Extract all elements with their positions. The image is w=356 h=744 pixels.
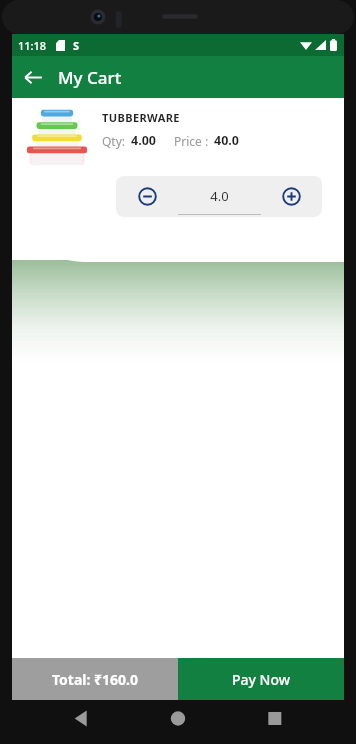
staticText: 40.0 bbox=[214, 132, 239, 149]
button[interactable]: Increase quantity bbox=[261, 176, 322, 217]
staticText: Pay Now bbox=[232, 670, 291, 689]
staticText: S bbox=[73, 38, 80, 53]
staticText: Total: ₹160.0 bbox=[52, 670, 139, 689]
staticText: 4.0 bbox=[210, 187, 229, 205]
button[interactable]: Total: ₹160.0 bbox=[12, 658, 178, 700]
staticText: 4.00 bbox=[131, 132, 156, 149]
button[interactable]: Back bbox=[12, 56, 54, 98]
staticText: My Cart bbox=[58, 66, 122, 89]
staticText: Price : bbox=[174, 133, 209, 149]
staticText: TUBBERWARE bbox=[102, 110, 180, 125]
button[interactable]: Pay Now bbox=[178, 658, 344, 700]
button[interactable]: Decrease quantity bbox=[116, 176, 178, 217]
staticText: 11:18 bbox=[18, 38, 47, 53]
staticText: Qty: bbox=[102, 133, 126, 149]
